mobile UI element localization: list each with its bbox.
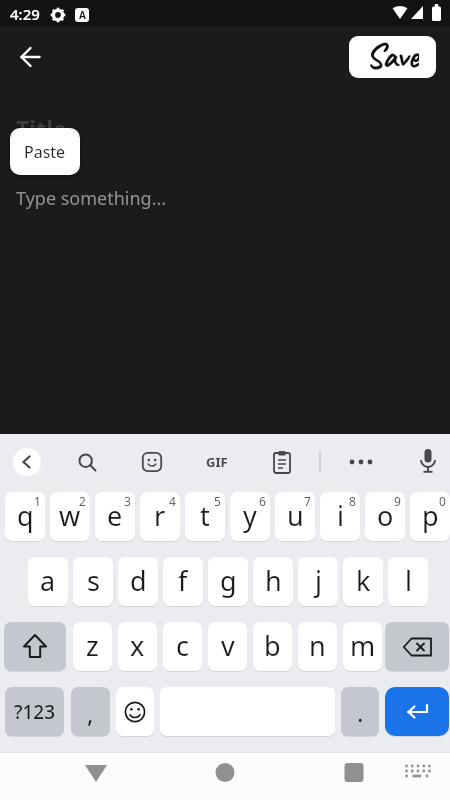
button[interactable]: k (343, 557, 383, 606)
button[interactable]: v (208, 622, 247, 671)
button[interactable]: t (185, 492, 225, 541)
staticText: n (309, 627, 326, 664)
button[interactable]: , (71, 687, 110, 736)
button[interactable] (340, 758, 368, 786)
button[interactable]: ?123 (5, 687, 64, 736)
button[interactable]: p (410, 492, 450, 541)
button[interactable]: c (163, 622, 202, 671)
button[interactable]: d (118, 557, 158, 606)
staticText: Title (16, 113, 67, 144)
staticText: r (154, 497, 166, 534)
staticText: 6 (259, 493, 266, 509)
button[interactable] (142, 452, 162, 472)
staticText: s (87, 562, 100, 599)
staticText: 7 (304, 493, 311, 509)
staticText: t (200, 497, 210, 534)
staticText: f (178, 562, 188, 599)
button[interactable]: Paste (10, 128, 80, 175)
button[interactable]: q (5, 492, 45, 541)
button[interactable]: l (388, 557, 428, 606)
staticText: 2 (79, 493, 86, 509)
button[interactable]: z (73, 622, 112, 671)
button[interactable]: o (365, 492, 405, 541)
staticText: d (130, 562, 147, 599)
button[interactable]: u (275, 492, 315, 541)
staticText: l (405, 562, 412, 599)
button[interactable]: n (298, 622, 337, 671)
staticText: q (17, 497, 34, 534)
button[interactable] (385, 687, 449, 736)
staticText: k (356, 562, 371, 599)
button[interactable]: g (208, 557, 248, 606)
staticText: b (264, 627, 281, 664)
staticText: . (357, 696, 364, 729)
button[interactable]: e (95, 492, 135, 541)
staticText: a (40, 562, 56, 599)
staticText: e (107, 497, 123, 534)
staticText: A (79, 8, 86, 22)
button[interactable] (13, 448, 41, 476)
staticText: 9 (394, 493, 401, 509)
staticText: v (221, 627, 235, 664)
staticText: 0 (439, 493, 446, 509)
button[interactable] (348, 459, 374, 465)
staticText: 8 (349, 493, 356, 509)
button[interactable]: r (140, 492, 180, 541)
button[interactable]: x (118, 622, 157, 671)
staticText: 4 (169, 493, 176, 509)
button[interactable] (385, 622, 449, 671)
staticText: 3 (124, 493, 131, 509)
button[interactable] (21, 46, 41, 68)
button[interactable]: s (73, 557, 113, 606)
button[interactable]: a (28, 557, 68, 606)
staticText: Save (366, 36, 419, 76)
staticText: m (350, 627, 376, 664)
staticText: GIF (206, 453, 228, 471)
button[interactable]: b (253, 622, 292, 671)
staticText: j (315, 562, 322, 599)
staticText: 5 (214, 493, 221, 509)
staticText: w (59, 497, 81, 534)
button[interactable]: j (298, 557, 338, 606)
staticText: o (377, 497, 394, 534)
button[interactable]: f (163, 557, 203, 606)
button[interactable]: m (343, 622, 382, 671)
button[interactable] (116, 687, 154, 736)
staticText: z (86, 627, 99, 664)
staticText: ?123 (14, 699, 56, 725)
button[interactable] (77, 452, 99, 474)
button[interactable] (82, 758, 110, 786)
staticText: y (243, 497, 257, 534)
staticText: 1 (34, 493, 41, 509)
button[interactable]: Save (349, 36, 436, 78)
staticText: 4:29 (10, 4, 40, 24)
button[interactable] (211, 758, 239, 786)
button[interactable] (272, 451, 292, 474)
staticText: p (422, 497, 439, 534)
button[interactable]: y (230, 492, 270, 541)
button[interactable] (404, 758, 432, 786)
button[interactable]: h (253, 557, 293, 606)
button[interactable]: GIF (201, 448, 233, 476)
staticText: i (337, 497, 344, 534)
button[interactable] (419, 449, 437, 475)
staticText: c (176, 627, 189, 664)
button[interactable]: i (320, 492, 360, 541)
button[interactable]: w (50, 492, 90, 541)
button[interactable]: . (341, 687, 379, 736)
staticText: Type something... (16, 186, 167, 211)
button[interactable] (4, 622, 66, 671)
staticText: Paste (24, 141, 66, 163)
staticText: , (87, 697, 94, 730)
staticText: h (265, 562, 282, 599)
staticText: u (287, 497, 304, 534)
staticText: g (220, 562, 237, 599)
staticText: x (130, 627, 145, 664)
